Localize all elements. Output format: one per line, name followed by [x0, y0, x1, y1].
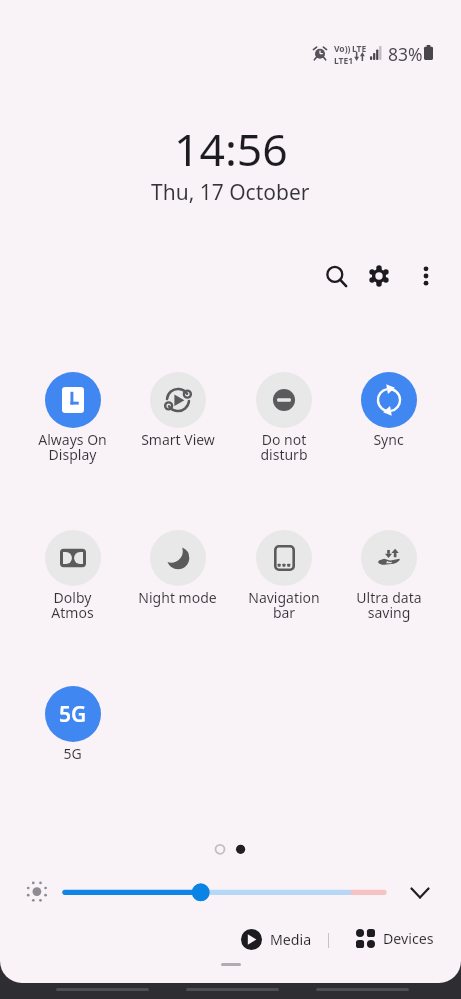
button[interactable]: Navigation bar — [231, 530, 336, 622]
button[interactable]: Media — [235, 925, 318, 954]
button[interactable]: Expand brightness — [402, 875, 438, 911]
staticText: Media — [270, 930, 312, 949]
button[interactable]: Settings — [358, 255, 400, 297]
button[interactable]: Smart View — [125, 372, 230, 449]
button[interactable]: Brightness — [58, 878, 392, 906]
staticText: 83% — [388, 42, 423, 66]
button[interactable]: Devices — [350, 925, 440, 952]
button[interactable]: More options — [405, 255, 447, 297]
staticText: Vo)) — [334, 43, 351, 55]
staticText: Sync — [373, 430, 404, 449]
staticText: Smart View — [141, 430, 215, 449]
staticText: Always On Display — [38, 430, 107, 464]
button[interactable]: Dolby Atmos — [20, 530, 125, 622]
staticText: Devices — [383, 929, 434, 948]
staticText: 14:56 — [174, 118, 288, 179]
button[interactable]: Always On Display — [20, 372, 125, 464]
button[interactable]: Search — [315, 255, 357, 297]
staticText: 5G — [63, 744, 82, 763]
staticText: LTE — [352, 43, 367, 55]
button[interactable]: 5G — [20, 686, 125, 763]
staticText: Ultra data saving — [356, 588, 422, 622]
button[interactable]: Sync — [336, 372, 441, 449]
button[interactable]: Ultra data saving — [336, 530, 441, 622]
staticText: LTE1 — [334, 55, 354, 67]
staticText: Thu, 17 October — [151, 178, 310, 207]
button[interactable]: Do not disturb — [231, 372, 336, 464]
button[interactable]: Night mode — [125, 530, 230, 607]
staticText: Navigation bar — [248, 588, 320, 622]
staticText: Do not disturb — [260, 430, 308, 464]
staticText: Dolby Atmos — [51, 588, 94, 622]
staticText: Night mode — [138, 588, 217, 607]
staticText: 5G — [59, 700, 87, 729]
